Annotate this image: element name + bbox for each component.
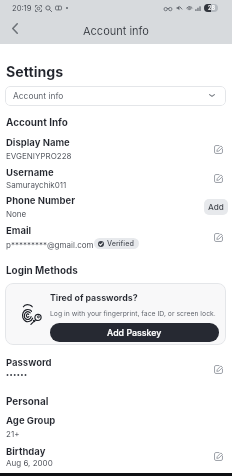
staticText: Password [6,357,52,368]
staticText: EVGENIYPRO228 [6,151,72,161]
staticText: Add Passkey [107,327,162,338]
staticText: Personal [6,395,49,407]
staticText: 28 [208,5,215,12]
staticText: Birthday [6,446,46,457]
staticText: Login Methods [6,264,78,276]
button[interactable]: Edit [208,446,228,466]
staticText: Email [6,225,32,236]
button[interactable]: Edit [208,227,228,247]
button[interactable]: Back [3,17,26,40]
staticText: Samuraychik011 [6,180,67,190]
button[interactable]: Add Passkey [50,323,219,342]
staticText: Add [208,202,224,212]
staticText: Age Group [6,415,56,426]
staticText: Account info [13,91,64,101]
staticText: Settings [6,63,64,80]
button[interactable]: Add [204,199,228,215]
staticText: 21+ [6,429,20,439]
staticText: p*********@gmail.com [6,240,94,250]
staticText: Tired of passwords? [50,292,138,303]
button[interactable]: Verified [94,238,139,249]
staticText: Verified [107,239,134,248]
staticText: 20:19 [12,4,32,13]
button[interactable]: Account info [5,86,226,106]
button[interactable]: Edit [208,139,228,159]
staticText: Display Name [6,137,70,148]
button[interactable]: Edit [208,359,228,379]
button[interactable]: Edit [208,168,228,188]
staticText: None [6,209,27,219]
staticText: Log in with your fingerprint, face ID, o… [50,309,216,317]
staticText: Username [6,167,54,178]
staticText: Phone Number [6,195,76,206]
staticText: Account Info [6,116,68,128]
staticText: Account info [83,24,149,37]
staticText: Aug 6, 2000 [6,458,53,468]
